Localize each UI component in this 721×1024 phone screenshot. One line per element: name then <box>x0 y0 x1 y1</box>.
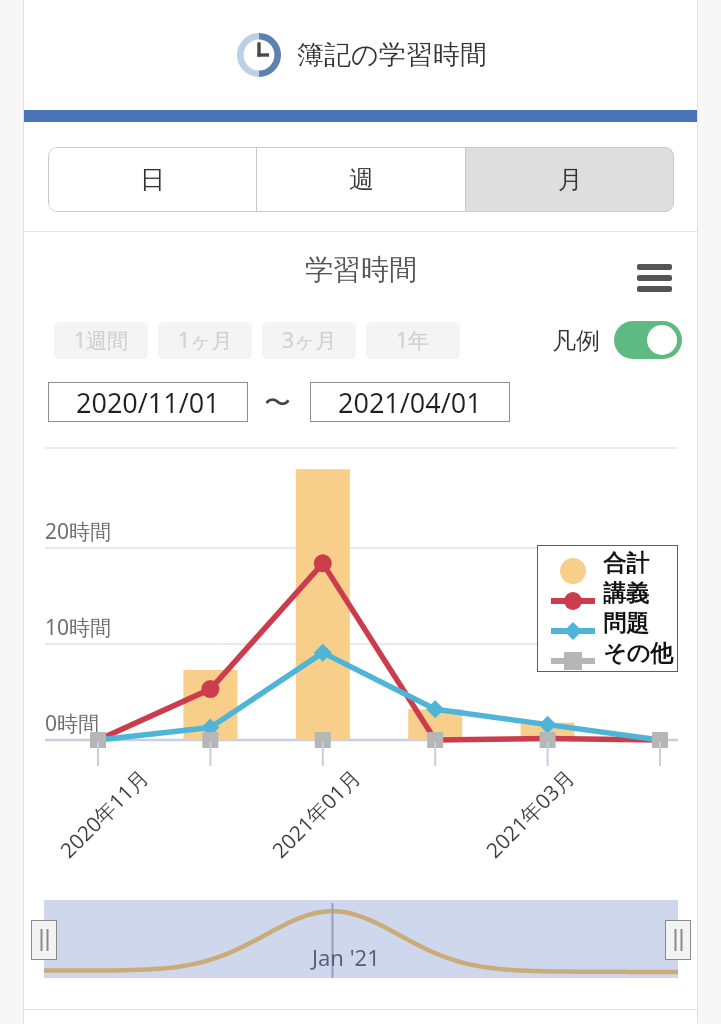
staticText: 2021/04/01 <box>338 384 482 421</box>
staticText: 簿記の学習時間 <box>297 38 487 72</box>
staticText: 週 <box>349 164 374 195</box>
button[interactable]: 3ヶ月 <box>262 322 356 359</box>
staticText: 2020年11月 <box>54 763 155 864</box>
staticText: 講義 <box>603 579 649 608</box>
button[interactable]: 2020/11/01 <box>48 382 248 422</box>
staticText: 問題 <box>603 609 649 638</box>
staticText: 1年 <box>396 326 430 355</box>
staticText: 20時間 <box>45 517 112 546</box>
staticText: 月 <box>558 164 583 195</box>
staticText: Jan '21 <box>312 942 380 972</box>
staticText: 凡例 <box>552 326 600 356</box>
button[interactable]: Toggle legend <box>614 321 682 359</box>
button[interactable]: 日 <box>48 147 256 212</box>
button[interactable]: 週 <box>257 147 465 212</box>
staticText: その他 <box>603 639 674 668</box>
staticText: 10時間 <box>45 613 112 642</box>
staticText: 2021年01月 <box>266 763 367 864</box>
button[interactable]: 1週間 <box>54 322 148 359</box>
button[interactable]: Menu <box>628 254 680 302</box>
staticText: 2020/11/01 <box>76 384 220 421</box>
staticText: 日 <box>140 164 165 195</box>
button[interactable]: 1年 <box>366 322 460 359</box>
staticText: 合計 <box>603 549 649 578</box>
staticText: 〜 <box>264 386 291 420</box>
button[interactable]: 月 <box>466 147 674 212</box>
button[interactable]: Adjust range <box>31 920 57 960</box>
staticText: 2021年03月 <box>480 763 581 864</box>
button[interactable]: Adjust range <box>665 920 691 960</box>
staticText: 学習時間 <box>305 252 417 287</box>
staticText: 1週間 <box>74 326 129 355</box>
button[interactable]: 1ヶ月 <box>158 322 252 359</box>
staticText: 1ヶ月 <box>178 326 233 355</box>
staticText: 3ヶ月 <box>282 326 337 355</box>
button[interactable]: 2021/04/01 <box>310 382 510 422</box>
staticText: 0時間 <box>45 709 100 738</box>
